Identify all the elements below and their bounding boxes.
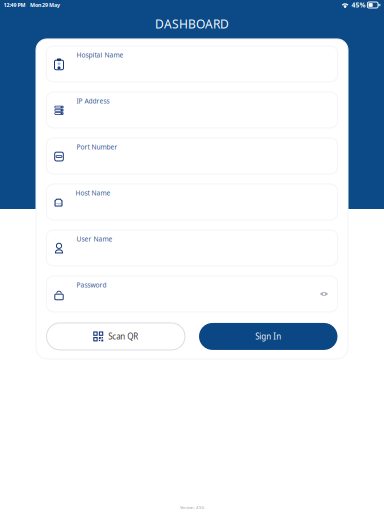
staticText: DASHBOARD [155, 16, 229, 32]
staticText: Password [76, 280, 106, 295]
staticText: 12:49 PM [3, 1, 25, 9]
staticText: Host Name [75, 188, 110, 203]
button[interactable]: Sign In [199, 323, 337, 350]
staticText: Mon 29 May [30, 1, 60, 9]
staticText: Sign In [255, 331, 281, 342]
staticText: Version : 4.9.6 [180, 505, 204, 510]
staticText: IP Address [76, 96, 109, 111]
staticText: Hospital Name [76, 50, 123, 65]
button[interactable]: Scan QR [46, 323, 185, 350]
staticText: 45% [351, 1, 365, 9]
staticText: Port Number [76, 142, 117, 157]
staticText: User Name [76, 234, 112, 249]
staticText: Scan QR [108, 331, 138, 342]
